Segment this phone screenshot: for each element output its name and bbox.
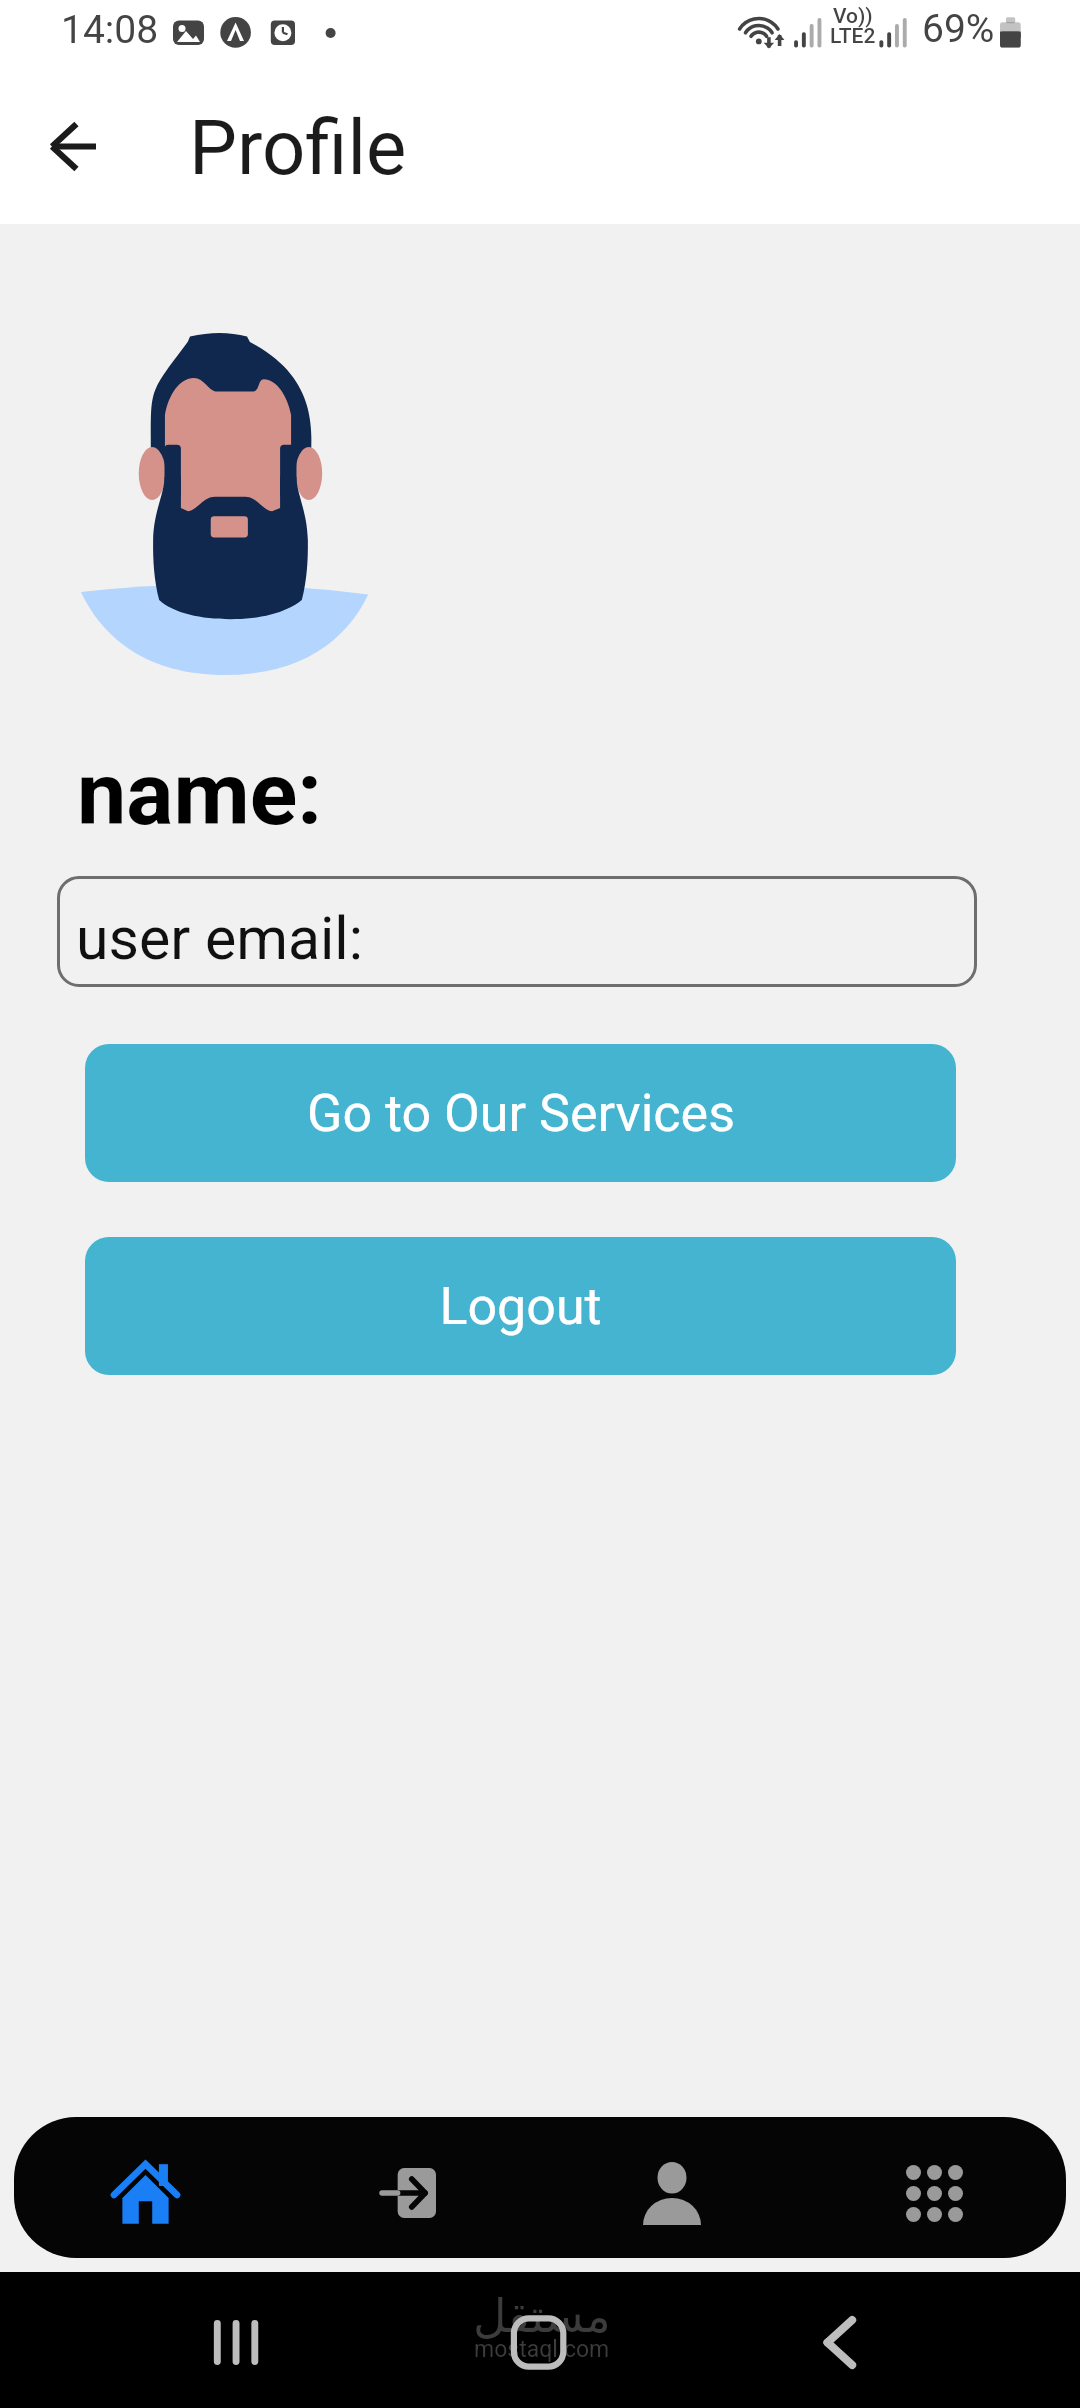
button[interactable]: user email: <box>57 876 977 987</box>
staticText: LTE2 <box>830 24 876 49</box>
staticText: user email: <box>76 904 363 973</box>
button[interactable]: Back <box>30 90 116 202</box>
staticText: مستقل <box>473 2289 611 2343</box>
button[interactable]: Go to Our Services <box>85 1044 956 1182</box>
staticText: mostaql.com <box>474 2336 610 2363</box>
staticText: 14:08 <box>61 7 159 53</box>
button[interactable]: Logout <box>85 1237 956 1375</box>
staticText: Logout <box>439 1276 602 1337</box>
staticText: Profile <box>189 103 407 192</box>
button[interactable]: Home <box>14 2128 277 2258</box>
staticText: Vo)) <box>833 4 873 29</box>
staticText: Go to Our Services <box>307 1083 735 1144</box>
button[interactable]: Apps <box>803 2128 1066 2258</box>
button[interactable]: Profile <box>540 2128 803 2258</box>
staticText: 69% <box>922 6 995 52</box>
button[interactable]: Login <box>277 2128 540 2258</box>
staticText: name: <box>77 742 322 845</box>
